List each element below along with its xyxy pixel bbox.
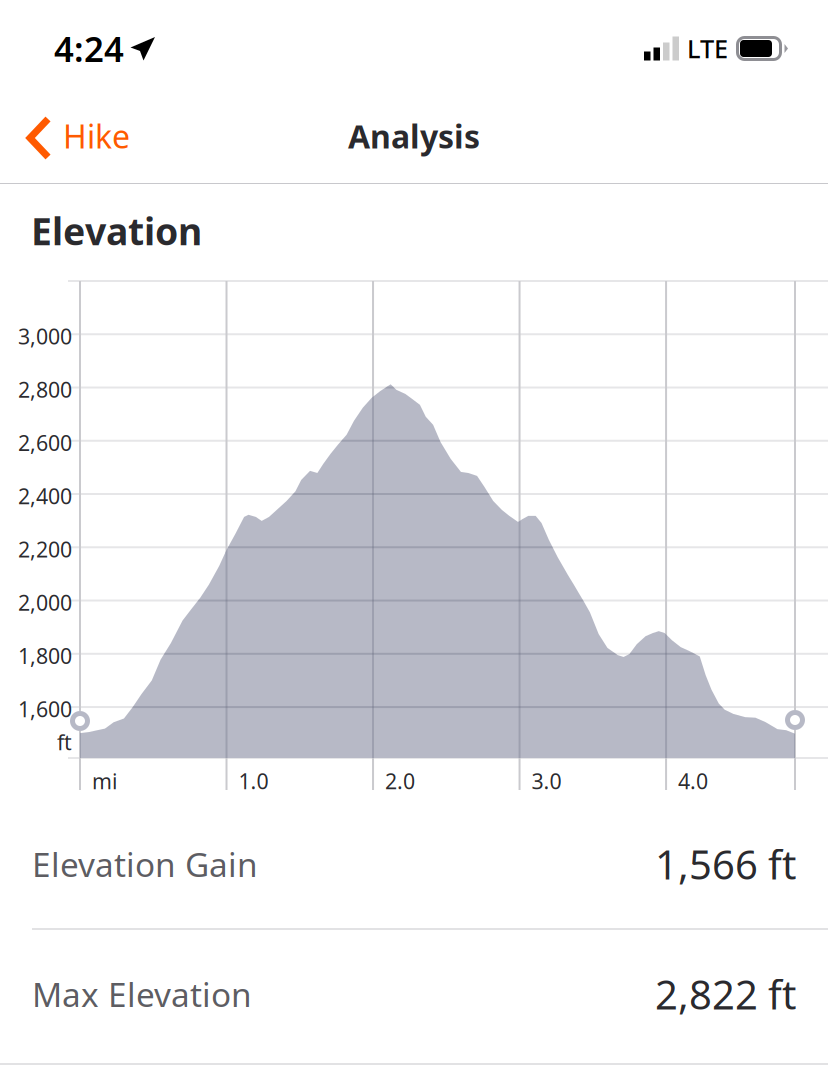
staticText: 2.0: [385, 767, 415, 795]
staticText: Hike: [63, 115, 130, 157]
staticText: 2,822 ft: [655, 967, 796, 1020]
staticText: 1,566 ft: [655, 837, 796, 890]
staticText: 4:24: [54, 25, 124, 71]
staticText: 2,400: [18, 482, 72, 510]
staticText: ft: [57, 728, 72, 756]
staticText: mi: [92, 767, 118, 795]
staticText: 2,000: [18, 588, 72, 617]
staticText: 4.0: [678, 767, 708, 795]
staticText: Elevation: [31, 206, 202, 256]
staticText: 2,600: [18, 429, 72, 457]
staticText: 3,000: [18, 322, 72, 350]
staticText: 3.0: [531, 767, 561, 795]
button[interactable]: Back to Hike: [0, 88, 130, 184]
button[interactable]: Max Elevation: [0, 930, 828, 1058]
staticText: LTE: [687, 32, 728, 65]
button[interactable]: Elevation Gain: [0, 800, 828, 928]
staticText: 1,800: [18, 642, 72, 670]
staticText: 1.0: [238, 767, 268, 795]
staticText: Elevation Gain: [32, 842, 258, 886]
staticText: 1,600: [18, 695, 72, 723]
staticText: Analysis: [348, 115, 480, 157]
staticText: 2,200: [18, 535, 72, 563]
staticText: 2,800: [18, 375, 72, 404]
staticText: Max Elevation: [32, 972, 252, 1016]
